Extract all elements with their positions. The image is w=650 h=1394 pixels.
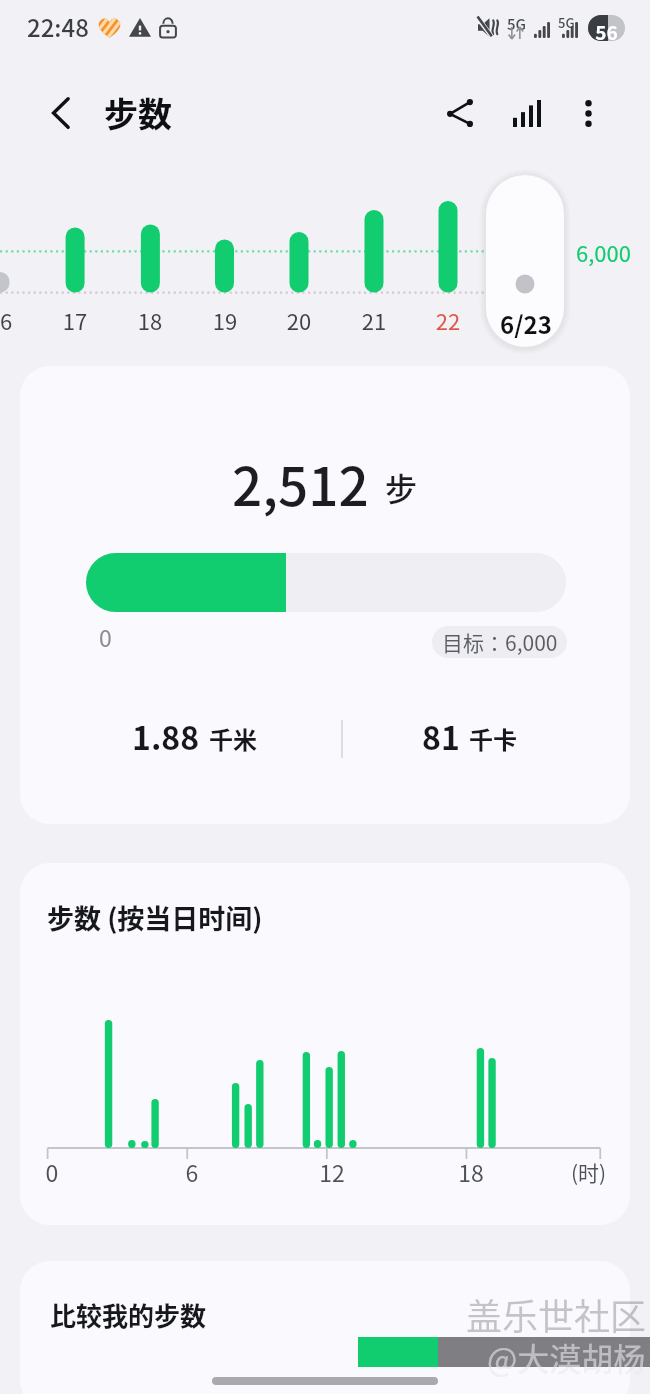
staticText: (时) bbox=[571, 1157, 607, 1187]
staticText: 81 bbox=[422, 713, 460, 759]
staticText: 1.88 bbox=[132, 713, 200, 759]
button[interactable] bbox=[486, 175, 564, 347]
button[interactable]: 步数 (按当日时间) bbox=[20, 863, 630, 1225]
staticText: 6,000 bbox=[576, 236, 631, 268]
staticText: 18 bbox=[120, 304, 180, 336]
staticText: 5G bbox=[558, 13, 575, 32]
staticText: 2,512 bbox=[232, 445, 369, 522]
staticText: 步 bbox=[385, 464, 418, 510]
button[interactable]: 2,512 bbox=[20, 366, 630, 824]
staticText: 比较我的步数 bbox=[50, 1296, 207, 1334]
staticText: 22:48 bbox=[27, 9, 89, 44]
staticText: 16 bbox=[0, 304, 30, 336]
staticText: 56 bbox=[588, 18, 625, 41]
staticText: 盖乐世社区 bbox=[466, 1288, 647, 1340]
staticText: 目标：6,000 bbox=[442, 627, 558, 657]
staticText: 0 bbox=[99, 620, 112, 653]
staticText: 步数 bbox=[104, 88, 172, 137]
button[interactable]: Back bbox=[28, 81, 92, 145]
button[interactable]: Share bbox=[428, 81, 492, 145]
staticText: 19 bbox=[195, 304, 255, 336]
staticText: 5G bbox=[507, 13, 527, 35]
staticText: 22 bbox=[418, 304, 478, 336]
staticText: 21 bbox=[344, 304, 404, 336]
staticText: 17 bbox=[45, 304, 105, 336]
staticText: 步数 (按当日时间) bbox=[47, 898, 263, 937]
staticText: 千卡 bbox=[469, 721, 517, 756]
staticText: @大漠胡杨 bbox=[487, 1334, 646, 1380]
button[interactable]: Trends bbox=[495, 81, 559, 145]
staticText: 0 bbox=[22, 1155, 82, 1188]
staticText: 6/23 bbox=[487, 306, 565, 341]
button[interactable]: 比较我的步数 bbox=[20, 1261, 630, 1394]
staticText: 12 bbox=[302, 1155, 362, 1188]
staticText: 千米 bbox=[209, 721, 257, 756]
staticText: 6 bbox=[162, 1155, 222, 1188]
staticText: 18 bbox=[441, 1155, 501, 1188]
staticText: 20 bbox=[269, 304, 329, 336]
button[interactable]: More options bbox=[556, 81, 620, 145]
